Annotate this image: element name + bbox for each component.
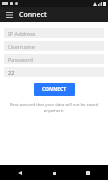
button[interactable]: Password — [4, 54, 104, 64]
staticText: Username — [8, 43, 35, 50]
button[interactable]: 22 — [4, 67, 104, 77]
button[interactable]: Recent apps — [82, 167, 94, 179]
staticText: Password — [8, 56, 33, 63]
button[interactable]: Home — [48, 167, 60, 179]
button[interactable]: IP Address — [4, 28, 104, 38]
staticText: CONNECT — [42, 86, 67, 93]
staticText: Rest assured that your data will not be … — [4, 102, 104, 114]
staticText: Connect — [19, 10, 47, 20]
button[interactable]: Username — [4, 41, 104, 51]
staticText: IP Address — [8, 30, 36, 37]
button[interactable]: Open navigation menu — [4, 10, 14, 20]
button[interactable]: CONNECT — [34, 83, 75, 96]
staticText: 22 — [8, 69, 15, 76]
button[interactable]: Back — [14, 167, 26, 179]
